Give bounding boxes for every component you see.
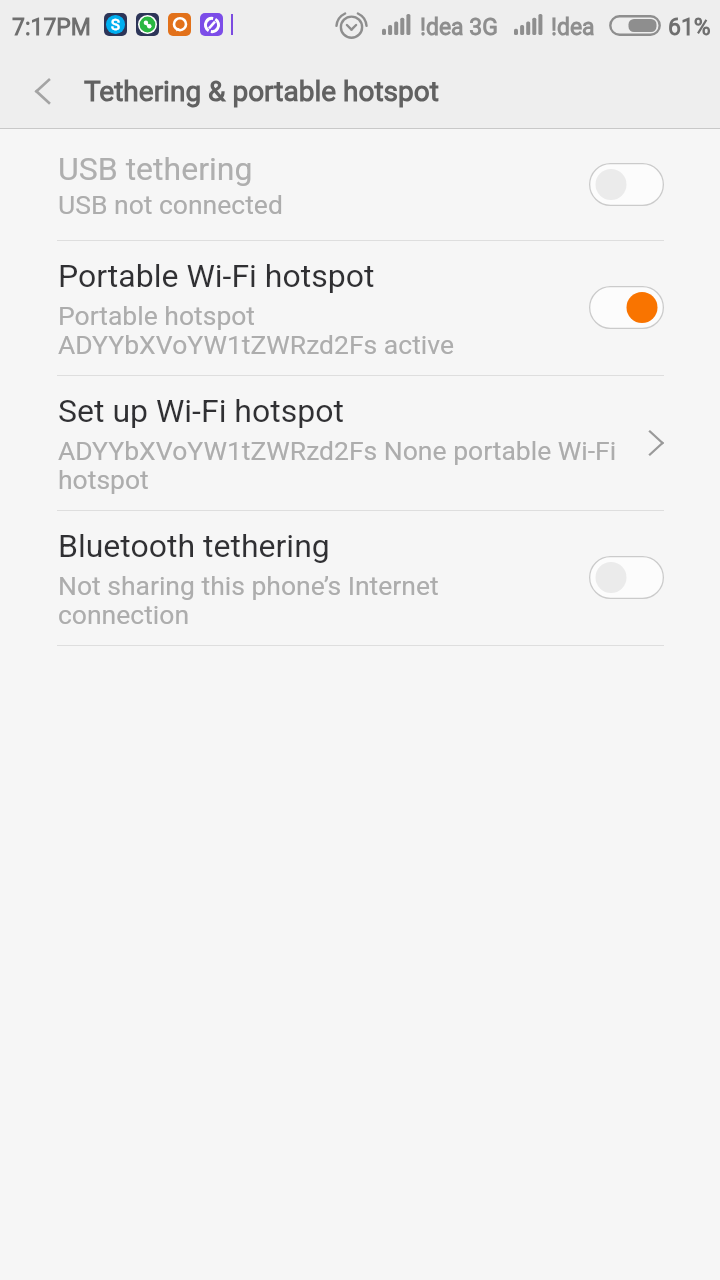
button[interactable]: Portable Wi-Fi hotspot [0,240,720,375]
staticText: S [111,16,120,34]
button[interactable]: Set up Wi-Fi hotspot [0,375,720,510]
button[interactable]: Toggle on [589,286,664,329]
staticText: Tethering & portable hotspot [84,75,439,108]
button[interactable]: Open Wi-Fi hotspot settings [642,429,670,457]
button[interactable]: USB tethering [0,129,720,240]
staticText: USB tethering [58,150,253,188]
staticText: ADYYbXVoYW1tZWRzd2Fs None portable Wi-Fi… [58,435,617,495]
staticText: Portable hotspot ADYYbXVoYW1tZWRzd2Fs ac… [58,300,454,360]
staticText: !dea 3G [420,14,498,41]
staticText: Not sharing this phone’s Internet connec… [58,570,439,630]
button[interactable]: Toggle off [589,556,664,599]
staticText: 61% [668,14,711,41]
button[interactable]: Back [0,62,80,128]
staticText: Portable Wi-Fi hotspot [58,257,375,295]
button[interactable]: Bluetooth tethering [0,510,720,645]
button[interactable]: Toggle off [589,163,664,206]
staticText: Bluetooth tethering [58,527,330,565]
staticText: Set up Wi-Fi hotspot [58,392,344,430]
staticText: !dea [551,14,595,41]
staticText: 7:17PM [12,14,91,41]
staticText: USB not connected [58,189,283,220]
